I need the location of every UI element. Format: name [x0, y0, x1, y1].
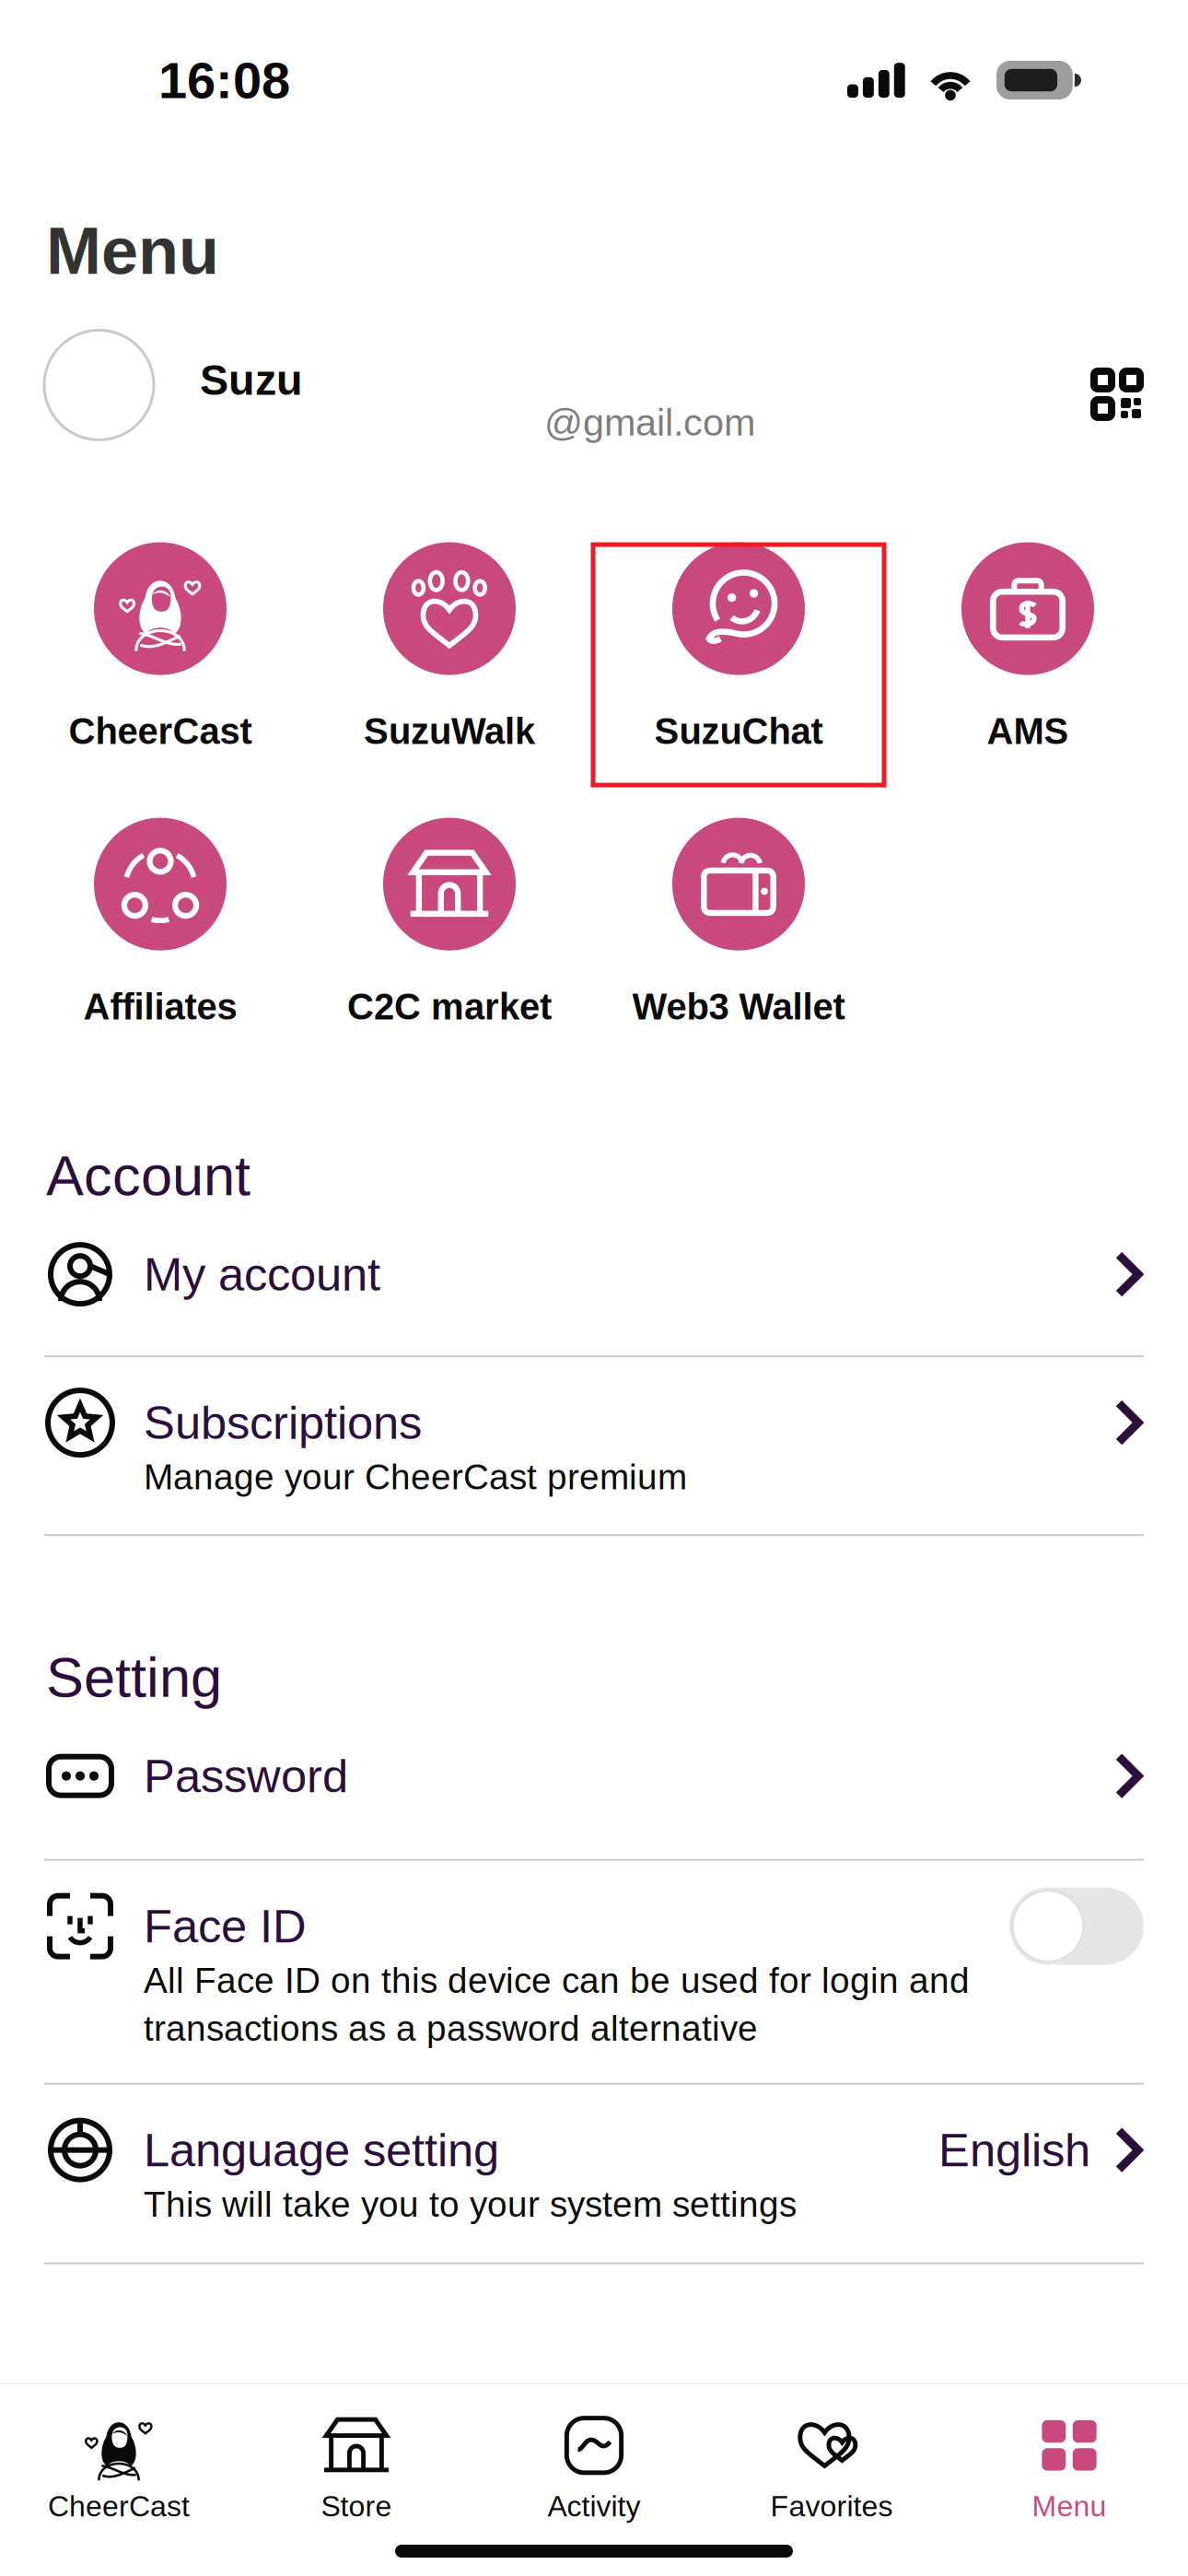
staticText: Menu: [46, 214, 219, 288]
staticText: English: [938, 2124, 1090, 2176]
button[interactable]: QR code: [1090, 368, 1144, 421]
button[interactable]: C2C market: [305, 818, 594, 1063]
staticText: Menu: [1032, 2490, 1106, 2523]
staticText: Favorites: [770, 2490, 893, 2523]
staticText: Suzu: [200, 356, 303, 404]
staticText: Face ID: [144, 1900, 307, 1952]
staticText: Setting: [46, 1646, 222, 1709]
button[interactable]: CheerCast: [16, 542, 305, 787]
staticText: SuzuChat: [654, 711, 823, 752]
button[interactable]: English: [0, 2085, 1188, 2264]
button[interactable]: My account: [0, 1207, 1188, 1357]
button[interactable]: Face ID: [0, 1861, 1188, 2085]
staticText: Manage your CheerCast premium: [144, 1457, 687, 1497]
button[interactable]: Favorites: [713, 2410, 950, 2523]
staticText: Subscriptions: [144, 1397, 422, 1449]
staticText: 16:08: [158, 51, 290, 109]
staticText: Account: [46, 1144, 250, 1207]
staticText: Affiliates: [83, 986, 237, 1027]
button[interactable]: Web3 Wallet: [594, 818, 883, 1063]
staticText: CheerCast: [69, 711, 252, 752]
staticText: AMS: [987, 711, 1069, 752]
staticText: @gmail.com: [544, 401, 755, 444]
staticText: This will take you to your system settin…: [144, 2185, 797, 2224]
button[interactable]: CheerCast: [0, 2410, 238, 2523]
button[interactable]: SuzuChat: [594, 542, 883, 787]
button[interactable]: Store: [238, 2410, 475, 2523]
staticText: My account: [144, 1248, 380, 1300]
staticText: Password: [144, 1750, 348, 1802]
staticText: SuzuWalk: [364, 711, 535, 752]
staticText: Store: [321, 2490, 392, 2523]
button[interactable]: Activity: [475, 2410, 713, 2523]
button[interactable]: Affiliates: [16, 818, 305, 1063]
staticText: Language setting: [144, 2124, 499, 2176]
staticText: Web3 Wallet: [632, 986, 845, 1027]
staticText: CheerCast: [48, 2490, 190, 2523]
staticText: transactions as a password alternative: [144, 2009, 758, 2048]
button[interactable]: SuzuWalk: [305, 542, 594, 787]
staticText: All Face ID on this device can be used f…: [144, 1961, 970, 2000]
button[interactable]: Menu: [950, 2410, 1188, 2523]
staticText: Activity: [547, 2490, 641, 2523]
button[interactable]: AMS: [883, 542, 1172, 787]
button[interactable]: Password: [0, 1709, 1188, 1861]
staticText: C2C market: [347, 986, 552, 1027]
button[interactable]: Subscriptions: [0, 1357, 1188, 1536]
